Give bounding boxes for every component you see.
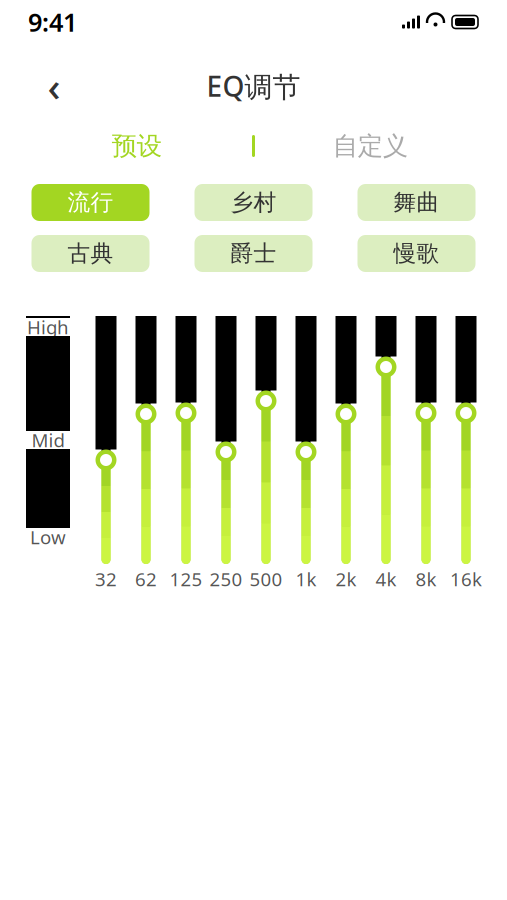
- button[interactable]: 流行: [31, 184, 149, 221]
- staticText: 慢歌: [393, 240, 439, 267]
- button[interactable]: 4k: [369, 316, 403, 594]
- staticText: 1k: [295, 567, 316, 591]
- button[interactable]: 1k: [289, 316, 323, 594]
- button[interactable]: 250: [209, 316, 243, 594]
- staticText: 预设: [112, 130, 162, 161]
- staticText: 自定义: [333, 130, 408, 161]
- staticText: 500: [249, 567, 282, 591]
- staticText: Mid: [31, 428, 64, 452]
- button[interactable]: 8k: [409, 316, 443, 594]
- staticText: 舞曲: [393, 189, 439, 216]
- button[interactable]: 自定义: [273, 127, 467, 165]
- staticText: 125: [169, 567, 202, 591]
- button[interactable]: 125: [169, 316, 203, 594]
- staticText: 9:41: [28, 5, 77, 39]
- button[interactable]: 古典: [31, 235, 149, 272]
- button[interactable]: 慢歌: [357, 235, 475, 272]
- staticText: ‹: [47, 59, 60, 112]
- staticText: 4k: [375, 567, 396, 591]
- staticText: 爵士: [230, 240, 276, 267]
- button[interactable]: 16k: [449, 316, 483, 594]
- staticText: 古典: [67, 240, 113, 267]
- button[interactable]: 预设: [40, 127, 233, 165]
- button[interactable]: 500: [249, 316, 283, 594]
- staticText: 62: [135, 567, 157, 591]
- button[interactable]: 乡村: [194, 184, 312, 221]
- button[interactable]: Back: [32, 64, 76, 108]
- staticText: 16k: [450, 567, 482, 591]
- button[interactable]: 舞曲: [357, 184, 475, 221]
- staticText: 乡村: [230, 189, 276, 216]
- staticText: Low: [30, 525, 66, 549]
- staticText: 32: [95, 567, 117, 591]
- staticText: 流行: [67, 189, 113, 216]
- button[interactable]: 2k: [329, 316, 363, 594]
- staticText: 8k: [415, 567, 436, 591]
- staticText: High: [27, 315, 69, 339]
- staticText: 2k: [335, 567, 356, 591]
- button[interactable]: 32: [89, 316, 123, 594]
- button[interactable]: 爵士: [194, 235, 312, 272]
- staticText: 250: [209, 567, 242, 591]
- button[interactable]: 62: [129, 316, 163, 594]
- staticText: EQ调节: [206, 67, 300, 105]
